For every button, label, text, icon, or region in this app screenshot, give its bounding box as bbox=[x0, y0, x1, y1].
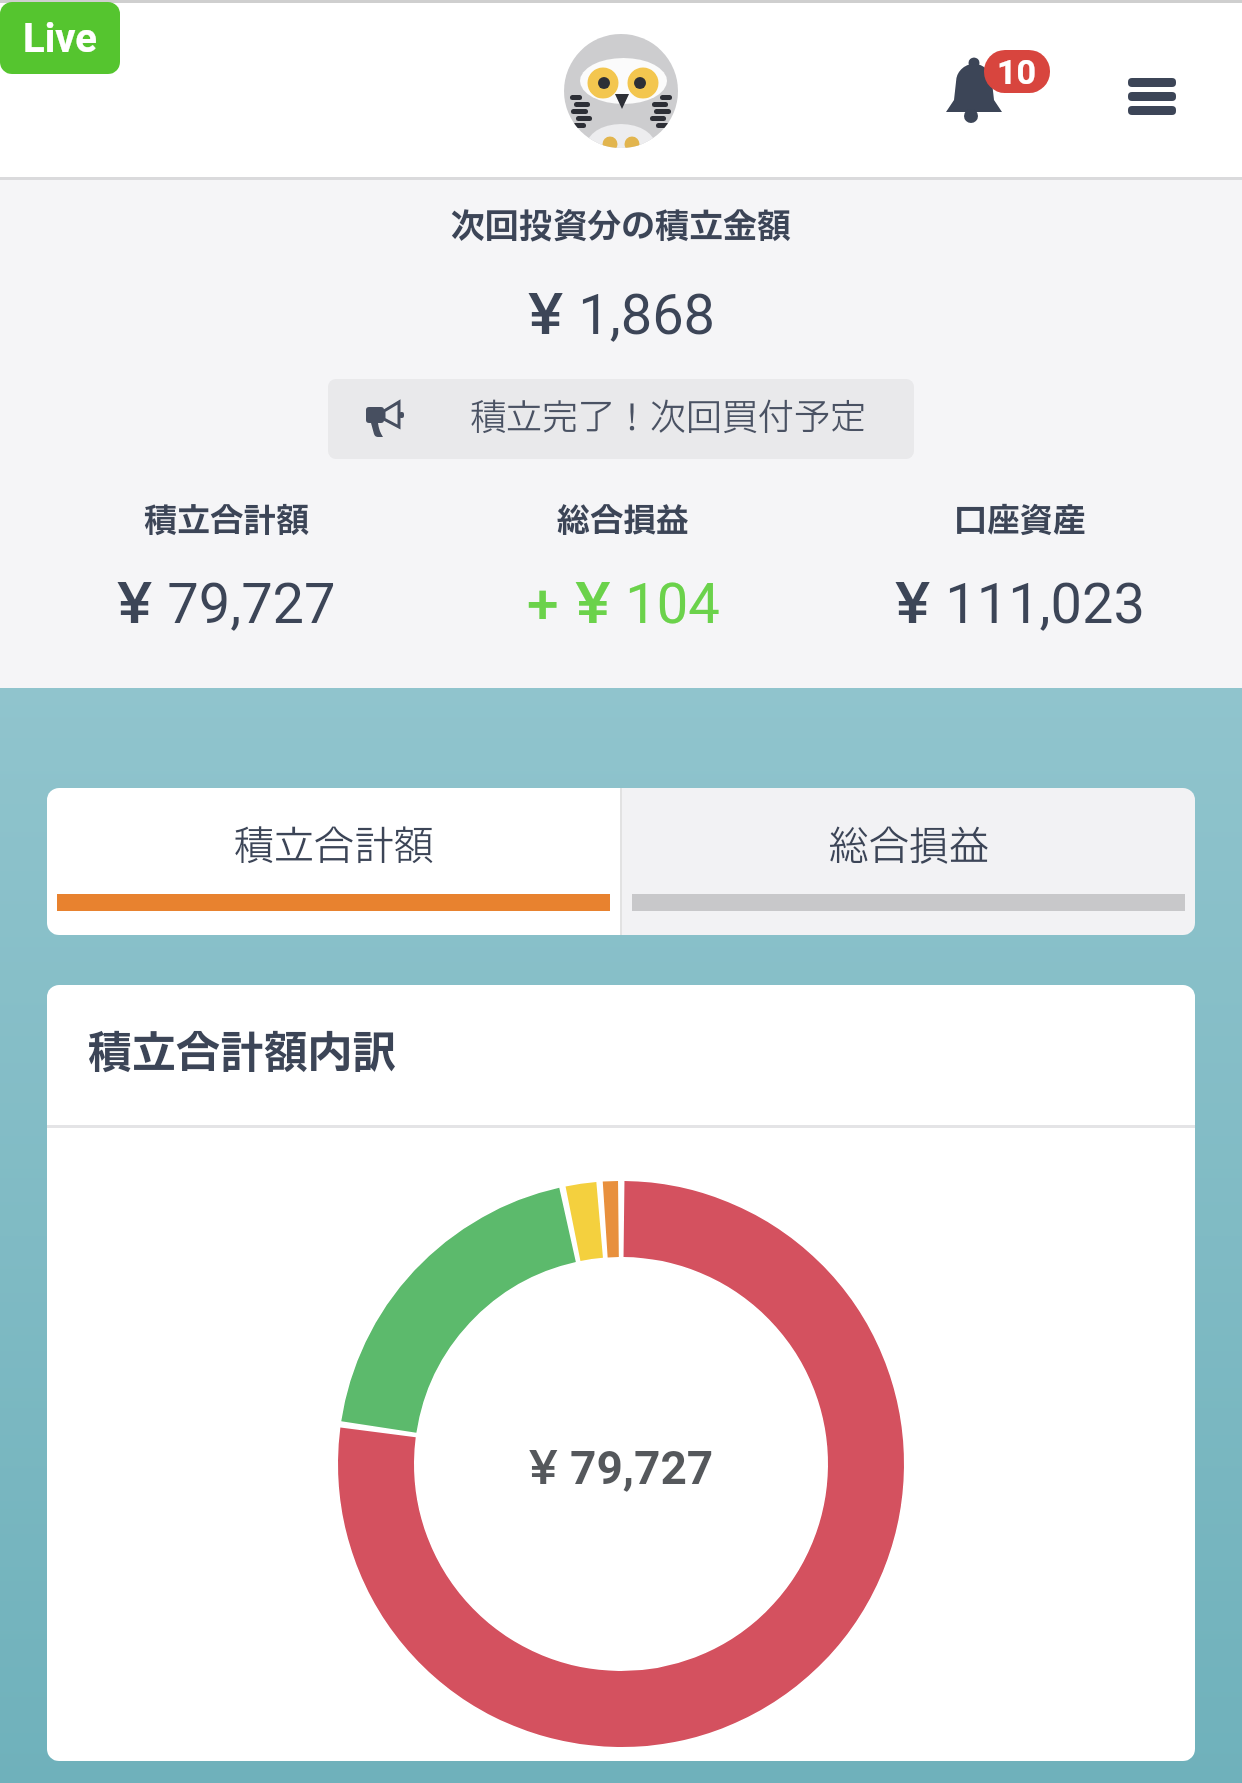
staticText: 積立合計額 bbox=[144, 497, 309, 546]
staticText: ¥ 79,727 bbox=[116, 564, 336, 648]
button[interactable]: 積立合計額 bbox=[47, 788, 620, 935]
staticText: 総合損益 bbox=[557, 497, 689, 546]
staticText: 次回投資分の積立金額 bbox=[451, 202, 791, 253]
button[interactable] bbox=[1120, 66, 1184, 126]
staticText: 積立合計額 bbox=[234, 818, 434, 878]
staticText: 口座資産 bbox=[954, 497, 1086, 546]
staticText: 積立完了！次回買付予定 bbox=[470, 392, 867, 446]
button[interactable]: 積立完了！次回買付予定 bbox=[328, 379, 914, 459]
button[interactable]: 総合損益 bbox=[622, 788, 1195, 935]
staticText: + ¥ 104 bbox=[525, 564, 720, 648]
staticText: 総合損益 bbox=[829, 818, 989, 878]
staticText: Live bbox=[23, 15, 97, 62]
staticText: ¥ 1,868 bbox=[527, 275, 716, 359]
staticText: 10 bbox=[997, 52, 1037, 92]
button[interactable]: Live bbox=[0, 2, 120, 74]
staticText: ¥ 111,023 bbox=[894, 564, 1146, 648]
staticText: ¥ 79,727 bbox=[528, 1435, 714, 1504]
staticText: 積立合計額内訳 bbox=[88, 1021, 396, 1087]
button[interactable]: 10 bbox=[930, 40, 1060, 140]
